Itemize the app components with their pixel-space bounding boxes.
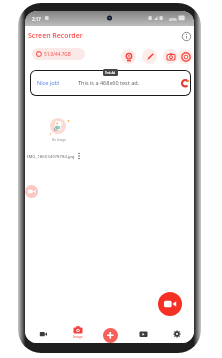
button[interactable] <box>178 49 193 64</box>
button[interactable]: Nice job! <box>30 70 191 96</box>
staticText: Test Ad <box>105 71 116 75</box>
staticText: IMG_186534978784.jpg <box>27 153 75 159</box>
staticText: No Image <box>52 138 66 142</box>
button[interactable] <box>103 328 118 343</box>
button[interactable] <box>163 49 178 64</box>
staticText: Nice job! <box>37 79 60 86</box>
button[interactable] <box>173 330 181 338</box>
staticText: 2:17 <box>32 16 41 22</box>
button[interactable]: IMG_186534978784.jpg <box>27 152 82 160</box>
button[interactable] <box>139 331 148 338</box>
button[interactable] <box>25 185 38 198</box>
button[interactable] <box>121 49 136 64</box>
button[interactable] <box>39 331 48 338</box>
button[interactable]: 51.0/44.7GB <box>32 48 85 60</box>
staticText: Image <box>73 335 83 339</box>
staticText: Screen Recorder <box>28 31 83 41</box>
button[interactable]: Image <box>70 326 85 339</box>
staticText: This is a 468x60 test ad. <box>78 79 140 86</box>
staticText: 49% <box>169 17 177 22</box>
button[interactable] <box>142 49 157 64</box>
staticText: 51.0/44.7GB <box>44 51 71 57</box>
button[interactable] <box>181 31 192 42</box>
button[interactable] <box>158 292 182 316</box>
